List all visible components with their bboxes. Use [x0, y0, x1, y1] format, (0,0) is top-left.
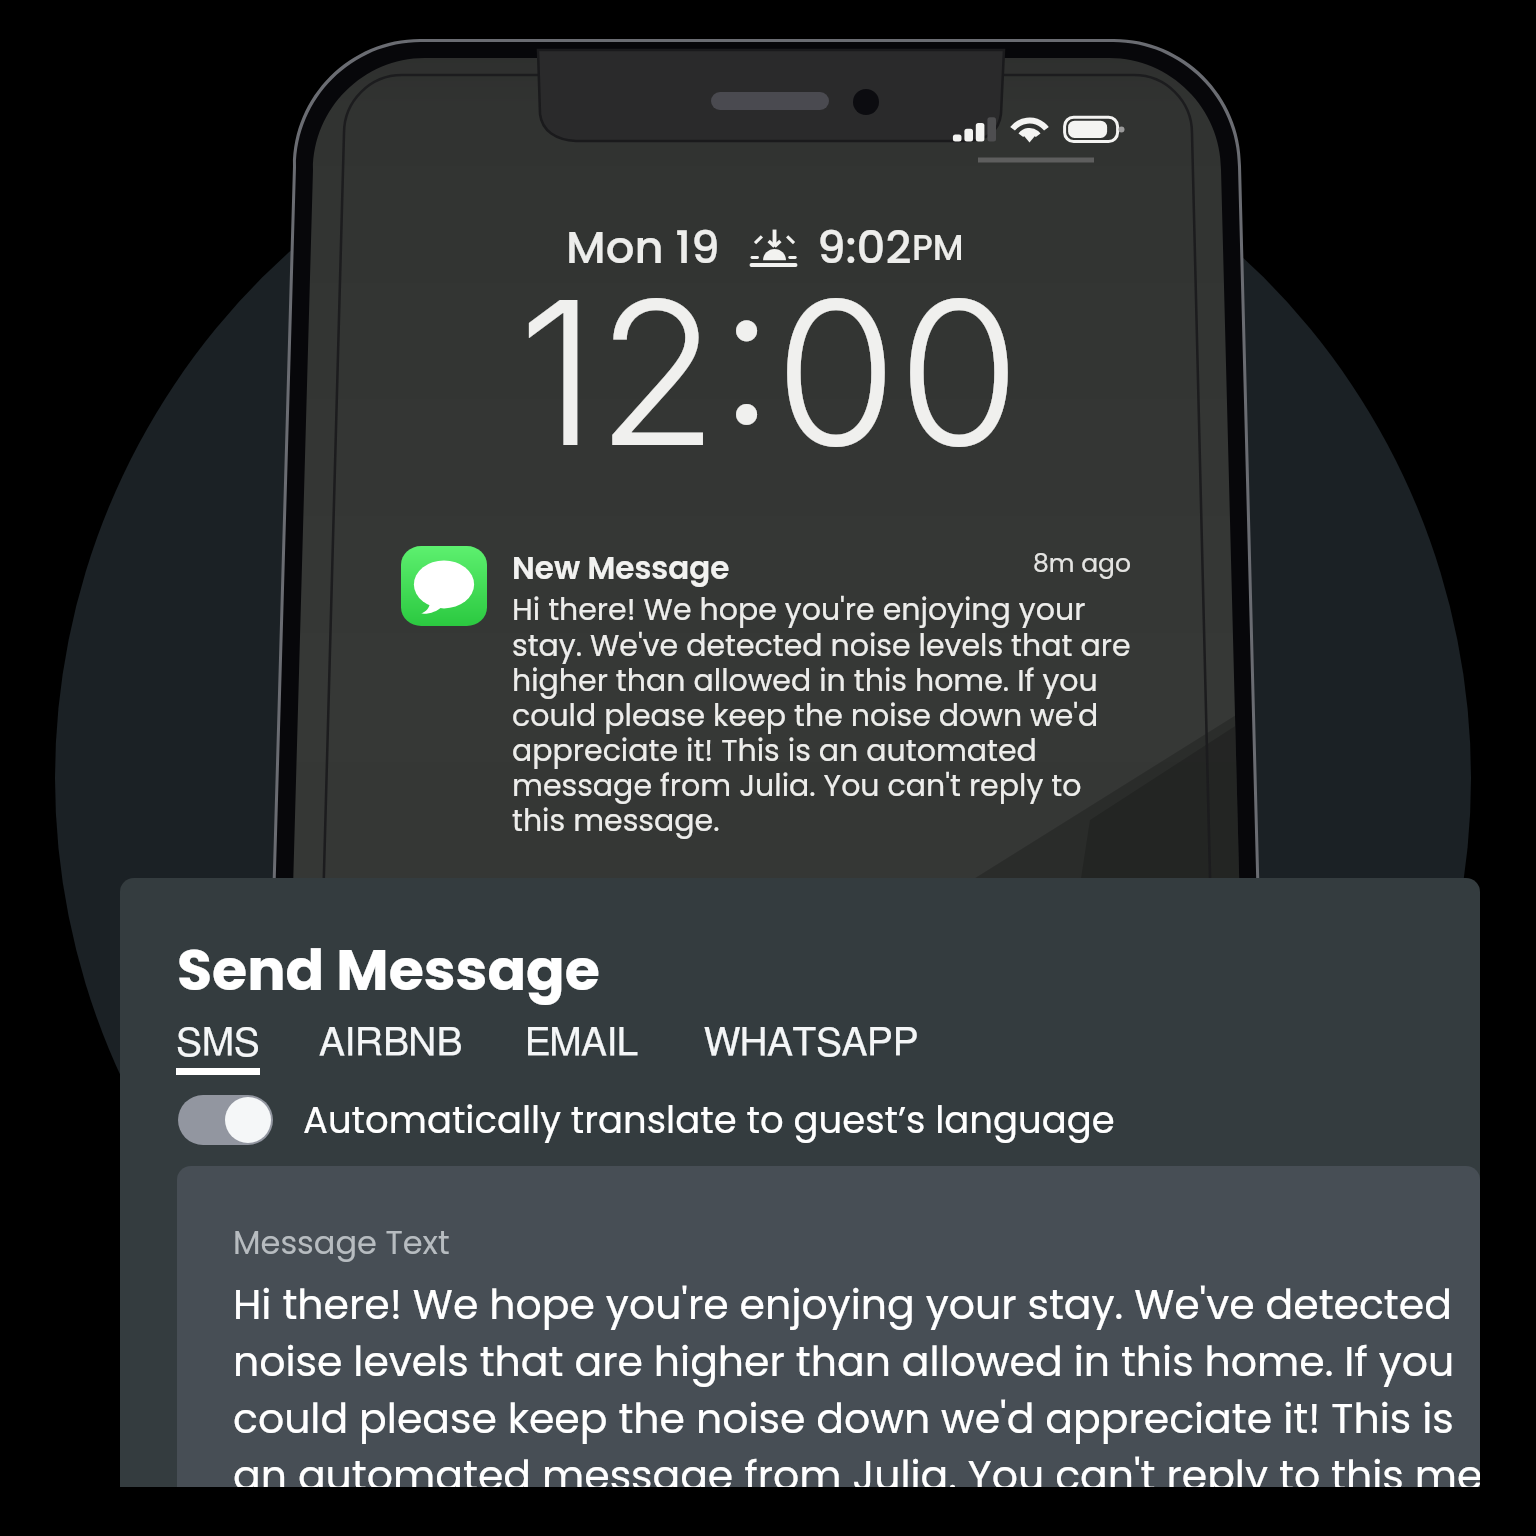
staticText: Automatically translate to guest’s langu…: [303, 1094, 1115, 1146]
staticText: could please keep the noise down we'd ap…: [233, 1390, 1454, 1447]
staticText: Hi there! We hope you're enjoying your s…: [233, 1276, 1452, 1333]
staticText: New Message: [512, 546, 730, 589]
button[interactable]: WHATSAPP: [704, 1024, 919, 1063]
button[interactable]: Automatically translate to guest’s langu…: [178, 1094, 1115, 1146]
button[interactable]: AIRBNB: [319, 1024, 463, 1063]
staticText: 12:00: [518, 252, 1021, 493]
button[interactable]: Message Text: [177, 1166, 1480, 1488]
staticText: Hi there! We hope you're enjoying your s…: [512, 589, 1132, 841]
button[interactable]: EMAIL: [525, 1024, 639, 1063]
staticText: an automated message from Julia. You can…: [233, 1447, 1480, 1488]
staticText: WHATSAPP: [704, 1024, 919, 1063]
staticText: PM: [912, 223, 964, 272]
staticText: 9:02: [817, 216, 912, 279]
button[interactable]: SMS: [176, 1024, 260, 1075]
staticText: Message Text: [233, 1220, 450, 1265]
staticText: 8m ago: [1033, 546, 1132, 581]
staticText: AIRBNB: [319, 1024, 463, 1063]
staticText: Mon 19: [566, 216, 720, 279]
staticText: noise levels that are higher than allowe…: [233, 1333, 1455, 1390]
staticText: EMAIL: [525, 1024, 639, 1063]
staticText: SMS: [176, 1024, 260, 1063]
button[interactable]: Send Message: [177, 930, 600, 1010]
